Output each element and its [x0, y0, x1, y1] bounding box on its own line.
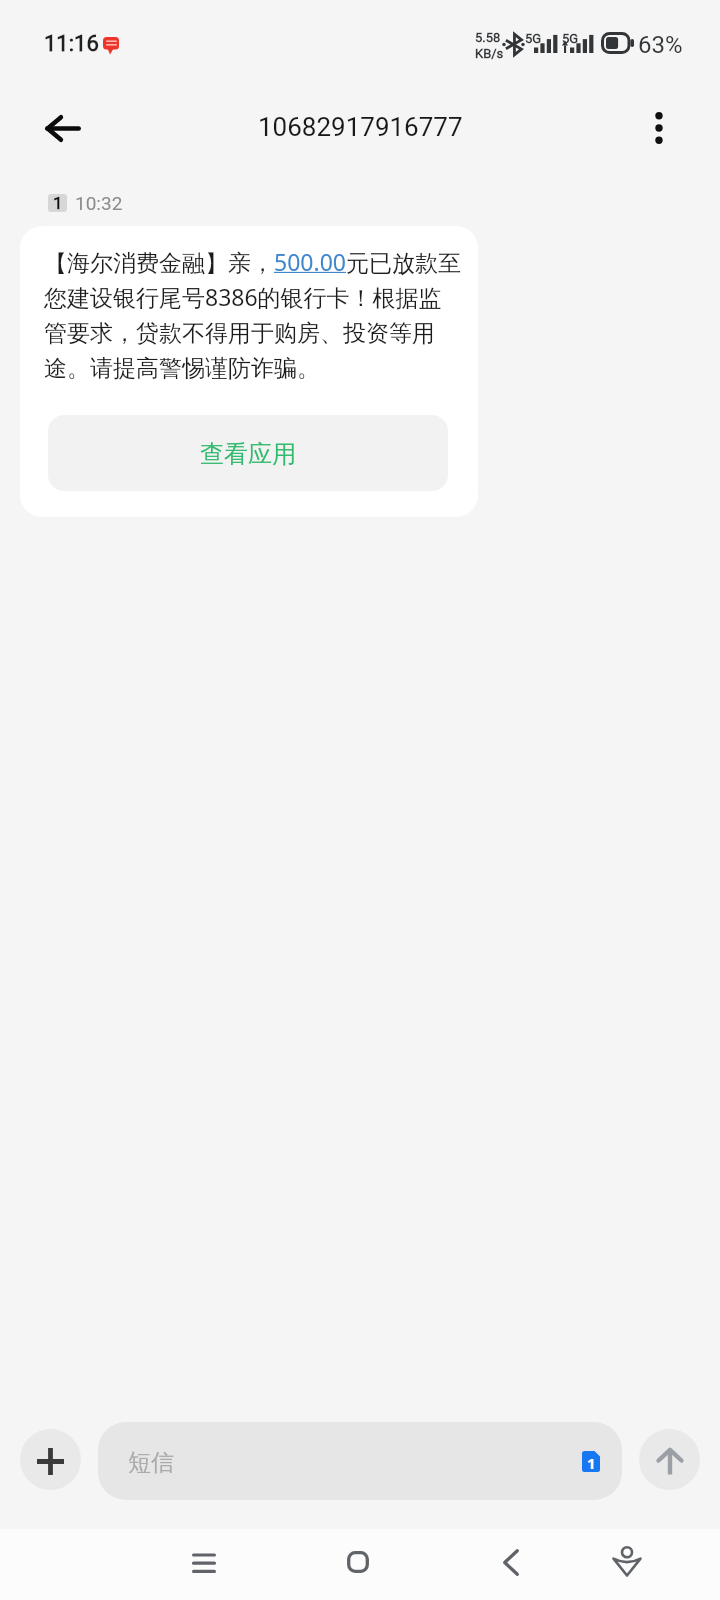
- button[interactable]: Back: [451, 1527, 571, 1598]
- staticText: 5.58: [475, 30, 501, 45]
- staticText: 1: [587, 1453, 596, 1473]
- button[interactable]: 【海尔消费金融】亲，500.00元已放款至您建设银行尾号8386的银行卡！根据监…: [20, 226, 478, 517]
- staticText: 短信: [128, 1448, 174, 1477]
- button[interactable]: Back: [27, 92, 99, 164]
- staticText: 5G: [525, 31, 542, 46]
- button[interactable]: 查看应用: [48, 415, 448, 491]
- staticText: 10682917916777: [258, 112, 463, 142]
- button[interactable]: Message input: [98, 1422, 622, 1500]
- button[interactable]: Assistant: [567, 1526, 687, 1597]
- staticText: 11:16: [44, 31, 99, 57]
- staticText: 1: [53, 194, 63, 211]
- staticText: KB/s: [475, 46, 504, 61]
- staticText: 查看应用: [200, 439, 296, 469]
- staticText: 63%: [638, 31, 683, 59]
- button[interactable]: More options: [623, 92, 695, 164]
- button[interactable]: Send: [639, 1429, 700, 1490]
- staticText: 5G: [562, 31, 579, 46]
- button[interactable]: Recent apps: [144, 1529, 264, 1600]
- button[interactable]: Add attachment: [20, 1429, 81, 1490]
- staticText: 【海尔消费金融】亲，500.00元已放款至您建设银行尾号8386的银行卡！根据监…: [44, 246, 463, 383]
- staticText: 10:32: [75, 192, 123, 214]
- button[interactable]: Home: [298, 1526, 418, 1597]
